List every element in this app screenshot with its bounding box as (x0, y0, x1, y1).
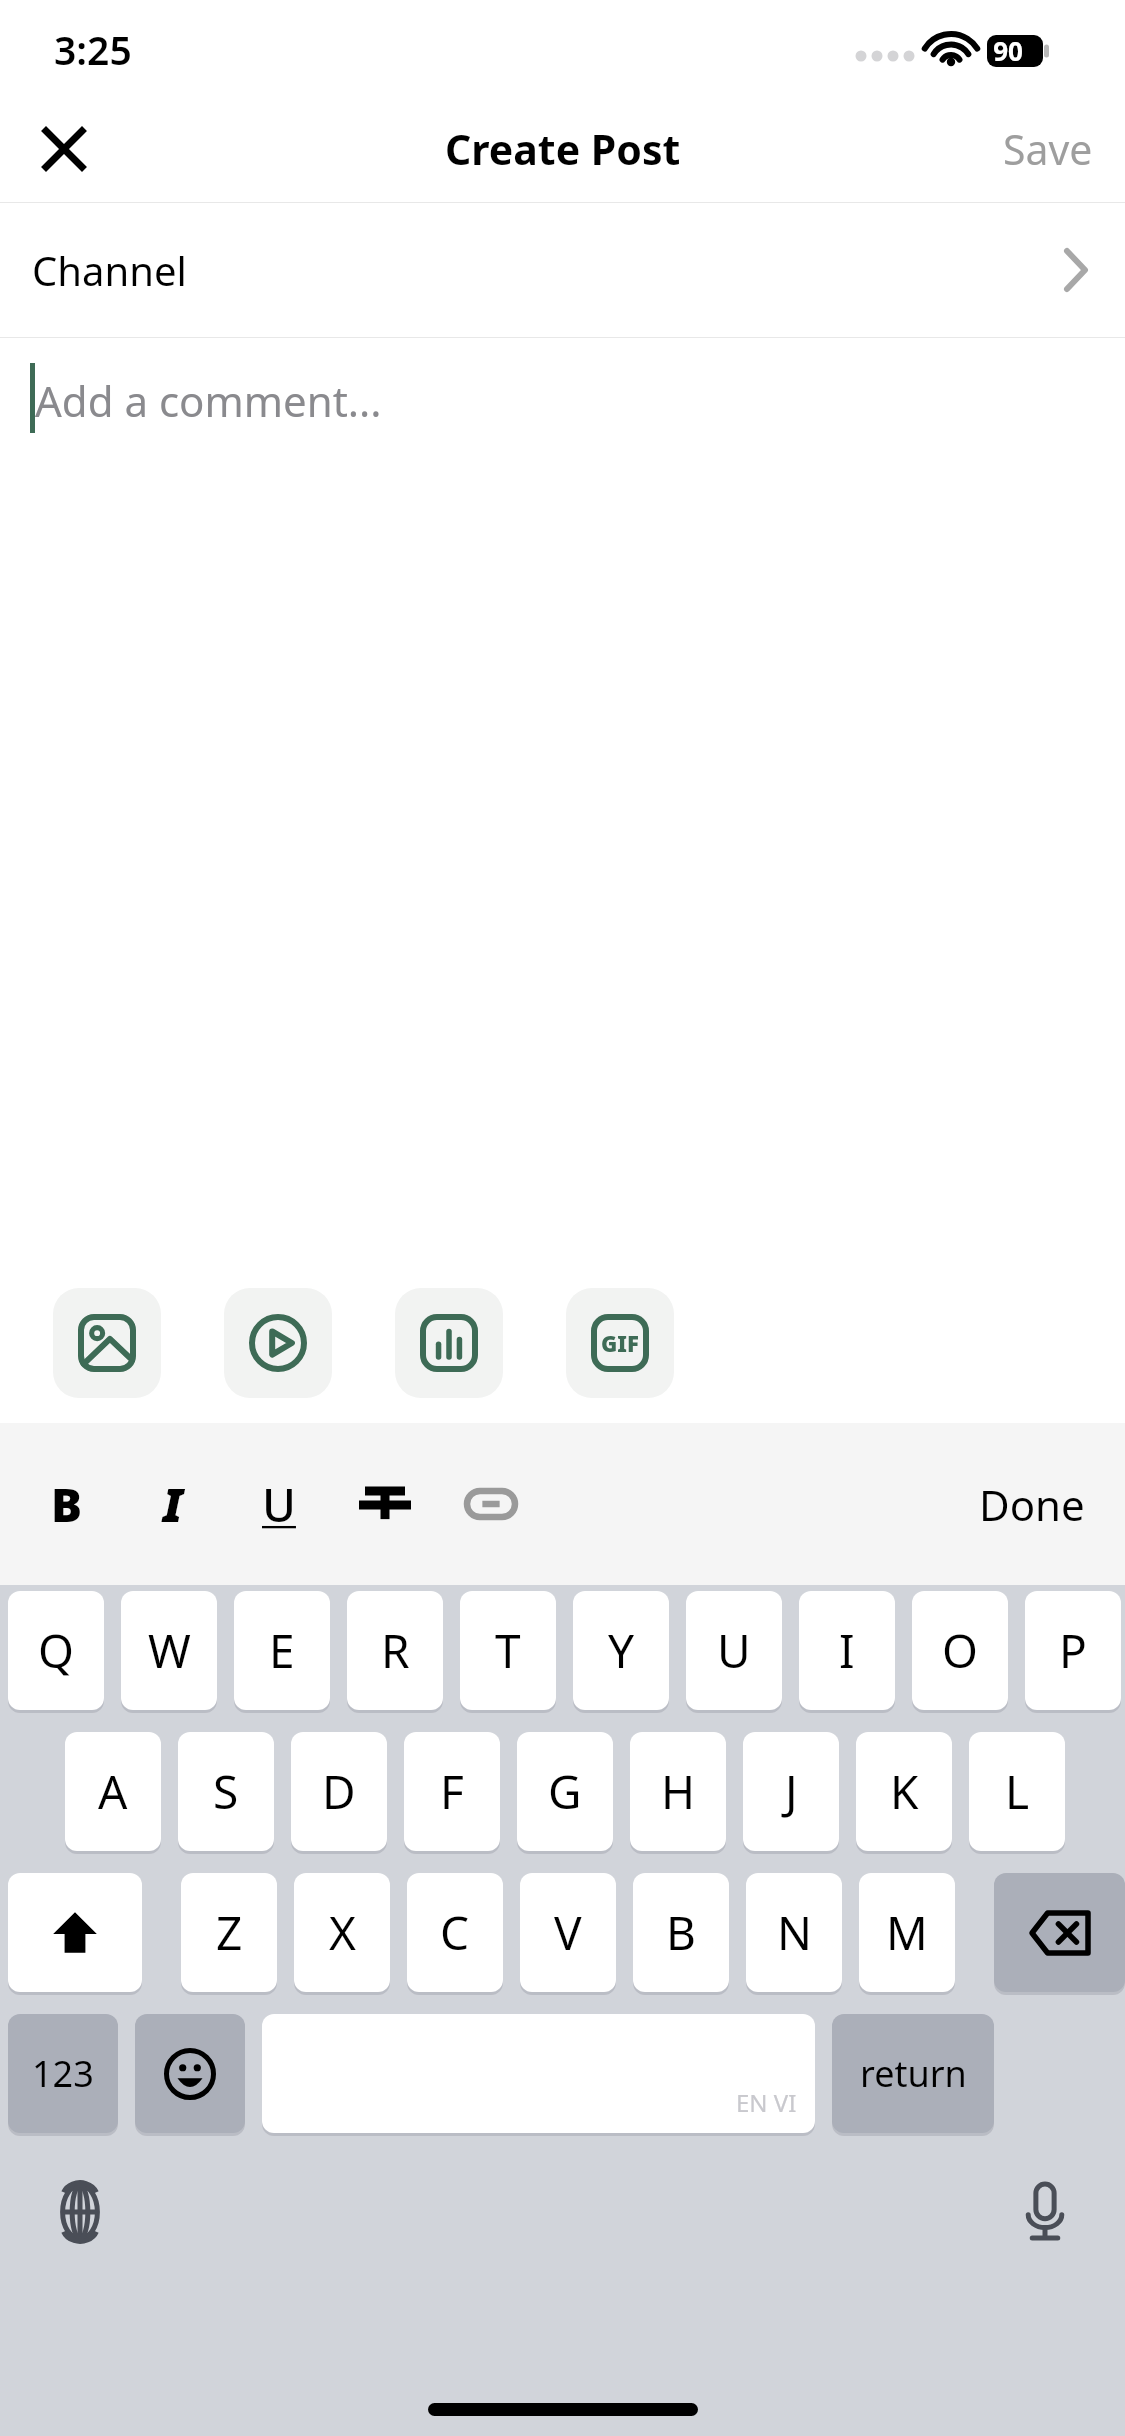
button[interactable]: T (460, 1591, 556, 1710)
staticText: I (839, 1619, 855, 1682)
button[interactable] (8, 1873, 142, 1992)
button[interactable]: Add a comment... (0, 338, 1125, 458)
button[interactable]: Insert link (438, 1449, 544, 1559)
staticText: B (666, 1901, 696, 1964)
button[interactable]: Change keyboard (34, 2166, 126, 2258)
button[interactable]: Z (181, 1873, 277, 1992)
staticText: M (886, 1901, 928, 1964)
staticText: 3:25 (54, 23, 132, 76)
staticText: S (213, 1760, 239, 1823)
staticText: Q (38, 1619, 74, 1682)
button[interactable]: Add poll (395, 1288, 503, 1398)
staticText: B (51, 1473, 83, 1536)
staticText: GIF (601, 1328, 639, 1358)
button[interactable]: P (1025, 1591, 1121, 1710)
other: Space (262, 2014, 815, 2133)
staticText: H (661, 1760, 696, 1823)
button[interactable]: F (404, 1732, 500, 1851)
staticText: K (890, 1760, 919, 1823)
button[interactable]: K (856, 1732, 952, 1851)
button[interactable]: Save (989, 109, 1107, 189)
staticText: C (440, 1901, 470, 1964)
button[interactable]: N (746, 1873, 842, 1992)
staticText: O (942, 1619, 978, 1682)
staticText: J (785, 1760, 798, 1823)
staticText: Channel (32, 243, 187, 297)
staticText: G (548, 1760, 582, 1823)
button[interactable]: S (178, 1732, 274, 1851)
button[interactable]: Add image (53, 1288, 161, 1398)
button[interactable]: A (65, 1732, 161, 1851)
staticText: A (98, 1760, 128, 1823)
button[interactable]: J (743, 1732, 839, 1851)
button[interactable]: EN VI (262, 2014, 815, 2133)
staticText: Done (979, 1476, 1085, 1533)
staticText: I (163, 1473, 183, 1536)
other: Emoji (135, 2014, 245, 2133)
staticText: P (1059, 1619, 1087, 1682)
staticText: N (777, 1901, 812, 1964)
staticText: Create Post (445, 121, 681, 177)
other: Backspace (994, 1873, 1125, 1992)
staticText: Save (1003, 121, 1093, 177)
button[interactable]: D (291, 1732, 387, 1851)
button[interactable] (135, 2014, 245, 2133)
staticText: W (148, 1619, 191, 1682)
button[interactable]: L (969, 1732, 1065, 1851)
staticText: return (860, 2049, 967, 2098)
button[interactable]: E (234, 1591, 330, 1710)
button[interactable]: Q (8, 1591, 104, 1710)
button[interactable]: R (347, 1591, 443, 1710)
other: Shift (8, 1873, 142, 1992)
staticText: V (554, 1901, 582, 1964)
staticText: Y (608, 1619, 635, 1682)
button[interactable]: 123 (8, 2014, 118, 2133)
staticText: R (381, 1619, 410, 1682)
button[interactable]: W (121, 1591, 217, 1710)
button[interactable]: Add video (224, 1288, 332, 1398)
button[interactable]: V (520, 1873, 616, 1992)
staticText: X (329, 1901, 356, 1964)
button[interactable]: X (294, 1873, 390, 1992)
staticText: F (440, 1760, 464, 1823)
button[interactable]: Channel (0, 203, 1125, 337)
button[interactable]: I (799, 1591, 895, 1710)
button[interactable]: Close (20, 105, 108, 193)
staticText: EN VI (736, 2086, 797, 2119)
button[interactable]: Bold (14, 1449, 120, 1559)
button[interactable]: Underline (226, 1449, 332, 1559)
button[interactable]: Y (573, 1591, 669, 1710)
staticText: E (269, 1619, 295, 1682)
staticText: 90 (993, 33, 1023, 68)
button[interactable]: return (832, 2014, 994, 2133)
staticText: 123 (32, 2049, 94, 2098)
button[interactable]: G (517, 1732, 613, 1851)
button[interactable] (994, 1873, 1125, 1992)
button[interactable]: B (633, 1873, 729, 1992)
staticText: Z (216, 1901, 243, 1964)
button[interactable]: Strikethrough (332, 1449, 438, 1559)
button[interactable]: C (407, 1873, 503, 1992)
staticText: U (262, 1473, 296, 1536)
button[interactable]: U (686, 1591, 782, 1710)
button[interactable]: H (630, 1732, 726, 1851)
staticText: D (322, 1760, 356, 1823)
button[interactable]: O (912, 1591, 1008, 1710)
staticText: L (1005, 1760, 1030, 1823)
button[interactable]: M (859, 1873, 955, 1992)
button[interactable]: Done (963, 1462, 1101, 1547)
staticText: Add a comment... (35, 372, 382, 429)
button[interactable]: Add GIF (566, 1288, 674, 1398)
staticText: T (495, 1619, 521, 1682)
button[interactable]: Italic (120, 1449, 226, 1559)
button[interactable]: Dictate (999, 2166, 1091, 2258)
staticText: U (717, 1619, 751, 1682)
